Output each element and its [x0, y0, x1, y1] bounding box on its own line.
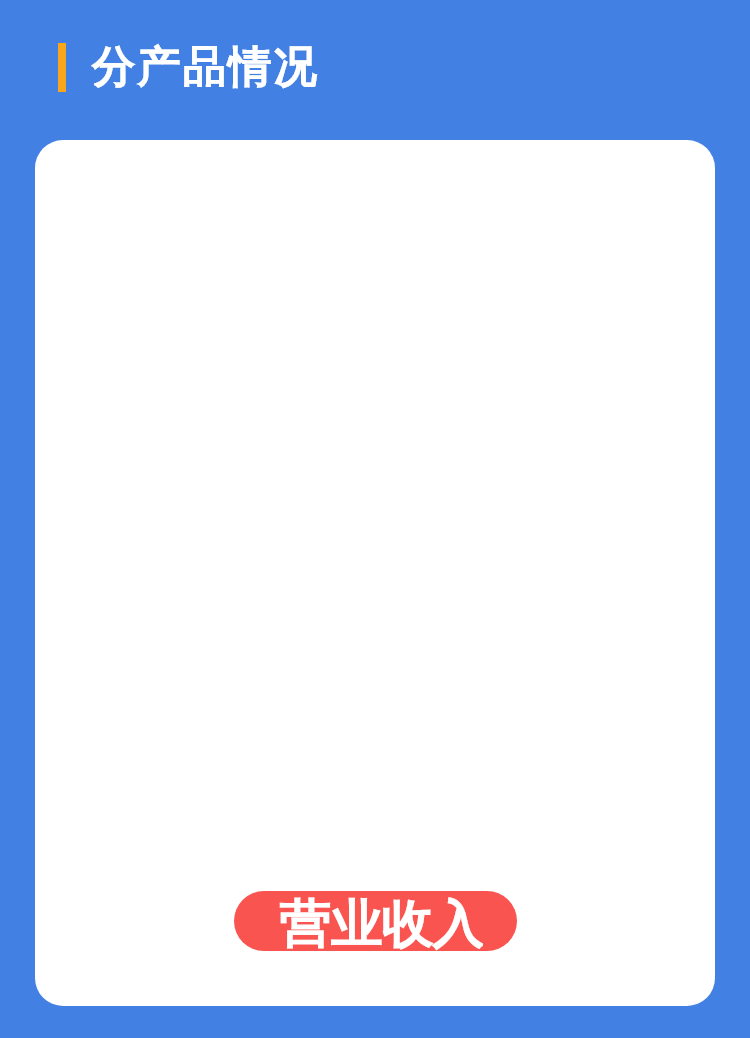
button[interactable]: 分产品情况: [58, 43, 319, 97]
staticText: 分产品情况: [91, 40, 318, 94]
staticText: 营业收入: [279, 893, 483, 951]
button[interactable]: 营业收入: [234, 891, 517, 951]
staticText: 分产品情况: [91, 40, 318, 94]
